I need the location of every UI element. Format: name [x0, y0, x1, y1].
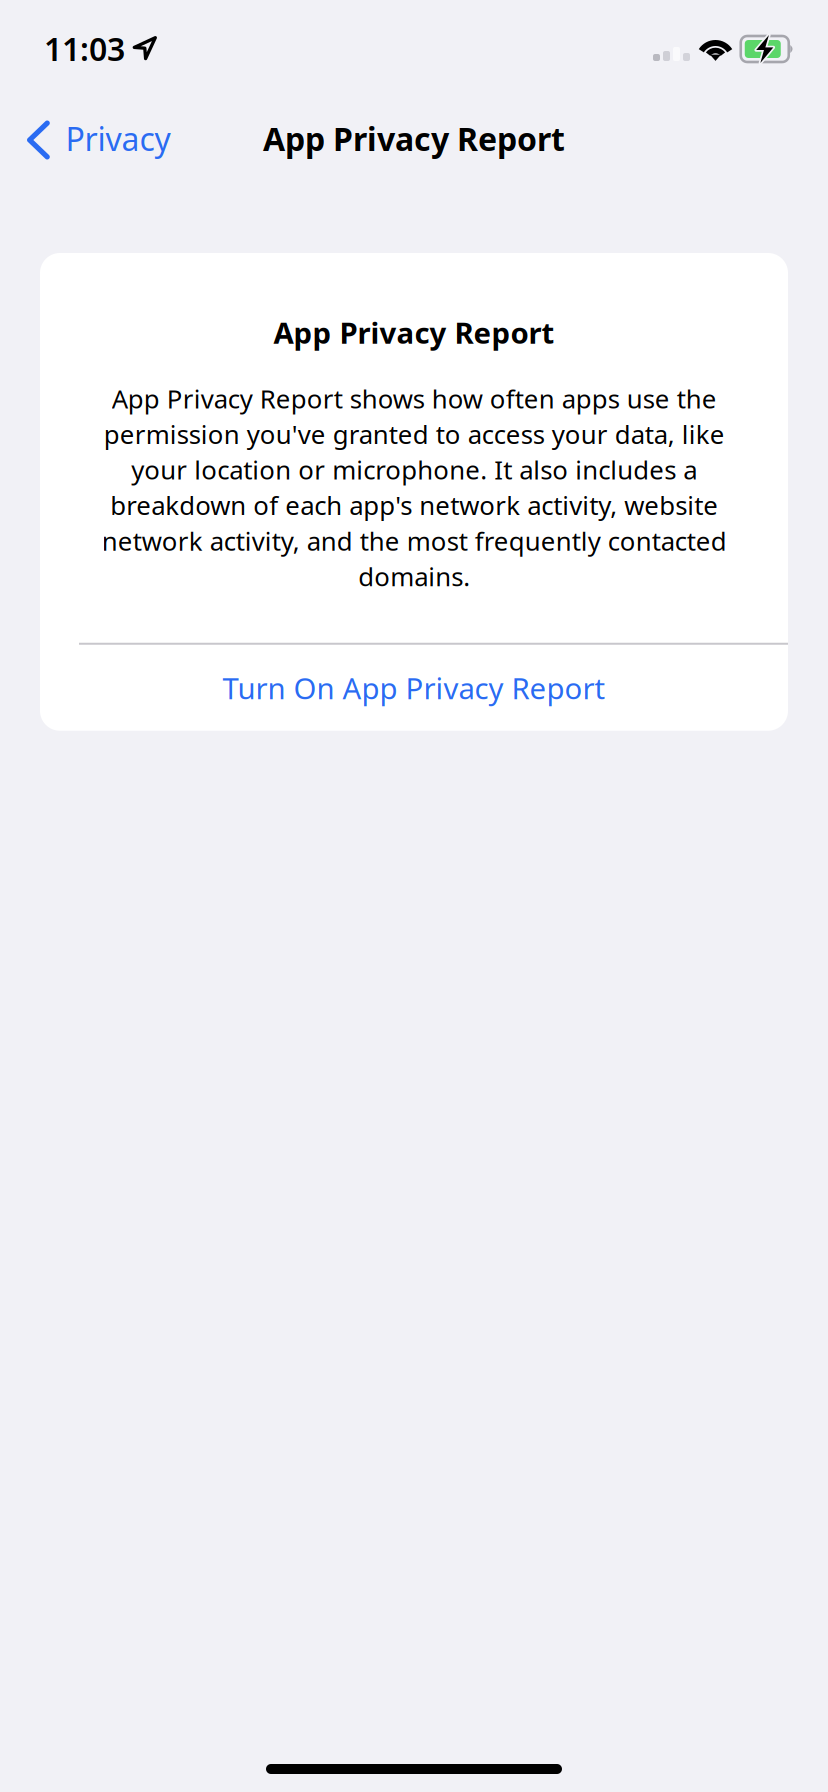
button[interactable]: Back to Privacy — [0, 94, 188, 183]
staticText: Privacy — [65, 117, 170, 160]
button[interactable]: Turn On App Privacy Report — [40, 645, 788, 731]
staticText: App Privacy Report — [263, 117, 565, 160]
staticText: 11:03 — [44, 27, 125, 70]
staticText: App Privacy Report — [273, 313, 554, 352]
staticText: App Privacy Report shows how often apps … — [101, 381, 726, 594]
staticText: Turn On App Privacy Report — [222, 668, 605, 707]
